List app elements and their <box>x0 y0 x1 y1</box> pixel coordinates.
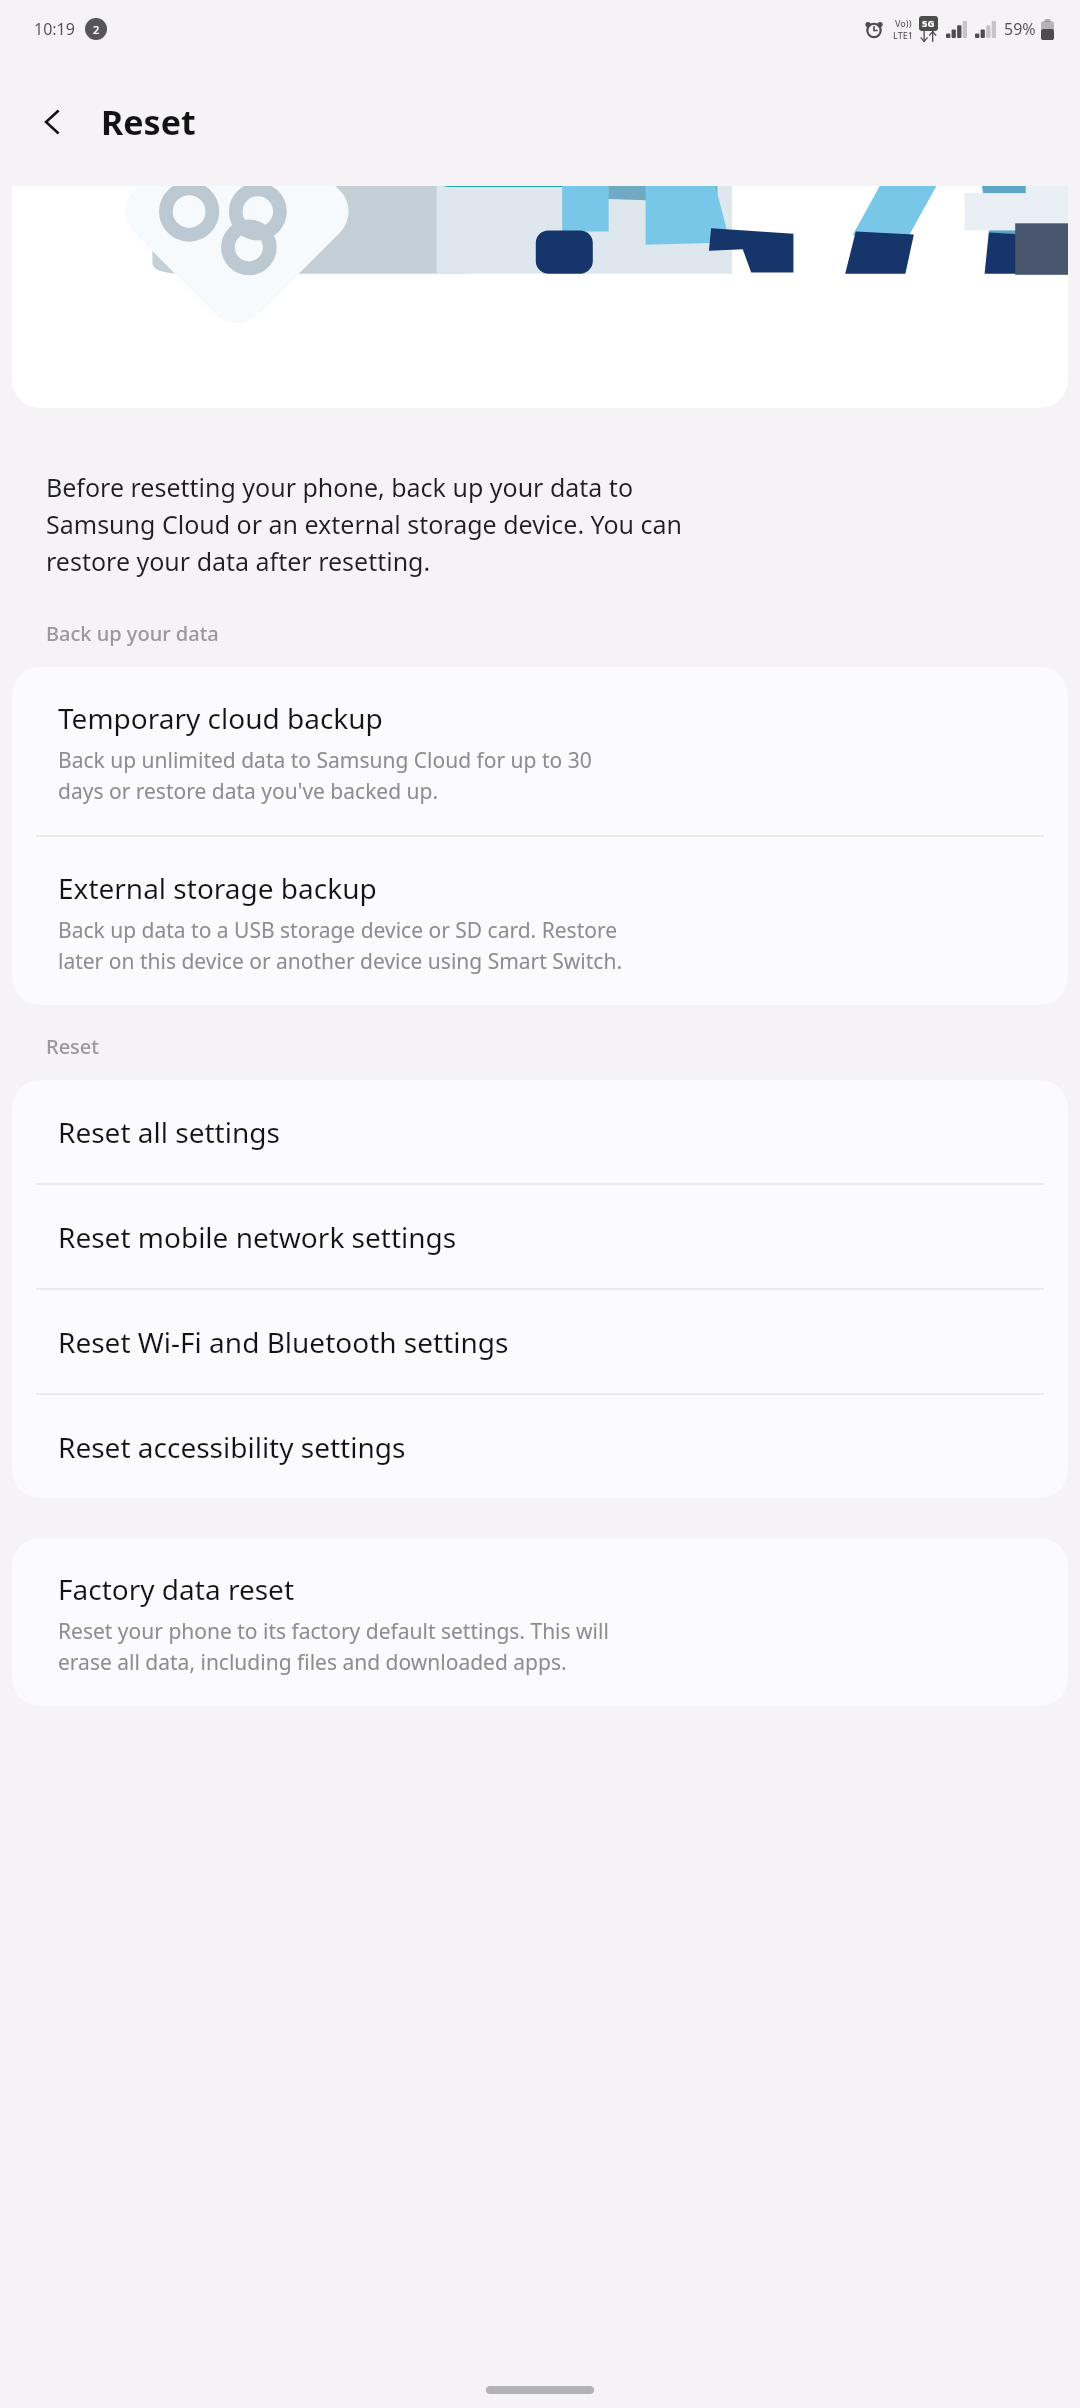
staticText: Back up unlimited data to Samsung Cloud … <box>58 746 592 805</box>
staticText: Reset Wi-Fi and Bluetooth settings <box>58 1323 509 1361</box>
staticText: Reset your phone to its factory default … <box>58 1617 609 1676</box>
staticText: Before resetting your phone, back up you… <box>46 470 683 578</box>
staticText: Reset all settings <box>58 1113 280 1151</box>
staticText: Reset <box>101 99 196 145</box>
staticText: Temporary cloud backup <box>58 699 383 737</box>
staticText: Back up your data <box>46 620 1080 647</box>
staticText: Reset mobile network settings <box>58 1218 457 1256</box>
staticText: Factory data reset <box>58 1570 294 1608</box>
staticText: 10:19 <box>34 18 75 40</box>
staticText: Back up data to a USB storage device or … <box>58 916 623 975</box>
staticText: Vo)) <box>895 17 912 29</box>
button[interactable]: Reset all settings <box>12 1080 1068 1183</box>
button[interactable]: Factory data reset <box>12 1538 1068 1706</box>
button[interactable]: Back <box>24 93 82 151</box>
button[interactable]: Reset accessibility settings <box>12 1395 1068 1498</box>
button[interactable]: Reset Wi-Fi and Bluetooth settings <box>12 1290 1068 1393</box>
staticText: Reset <box>46 1033 1080 1060</box>
button[interactable]: Temporary cloud backup <box>12 667 1068 835</box>
staticText: External storage backup <box>58 869 377 907</box>
staticText: 59% <box>1004 18 1036 40</box>
button[interactable]: Reset mobile network settings <box>12 1185 1068 1288</box>
staticText: 2 <box>93 22 100 37</box>
staticText: LTE1 <box>893 29 913 41</box>
button[interactable]: External storage backup <box>12 837 1068 1005</box>
staticText: Reset accessibility settings <box>58 1428 406 1466</box>
staticText: 5G <box>922 17 935 30</box>
